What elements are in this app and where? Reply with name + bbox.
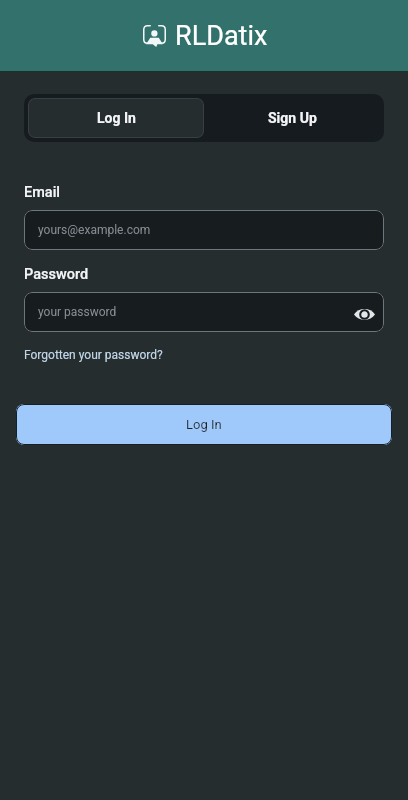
staticText: Forgotten your password? (24, 348, 163, 362)
staticText: Password (24, 266, 89, 283)
staticText: your password (38, 305, 117, 319)
button[interactable]: Show password (350, 292, 384, 332)
staticText: RLDatix (175, 20, 268, 52)
button[interactable]: Log In (28, 98, 204, 138)
staticText: Email (24, 184, 61, 201)
staticText: Log In (97, 110, 136, 126)
button[interactable]: Forgotten your password? (24, 348, 163, 362)
button[interactable]: yours@example.com (24, 210, 384, 250)
button[interactable]: Log In (16, 404, 392, 445)
staticText: Sign Up (268, 110, 317, 126)
button[interactable]: Sign Up (204, 98, 380, 138)
staticText: Log In (186, 417, 222, 432)
staticText: yours@example.com (38, 223, 151, 237)
button[interactable]: your password (24, 292, 384, 332)
